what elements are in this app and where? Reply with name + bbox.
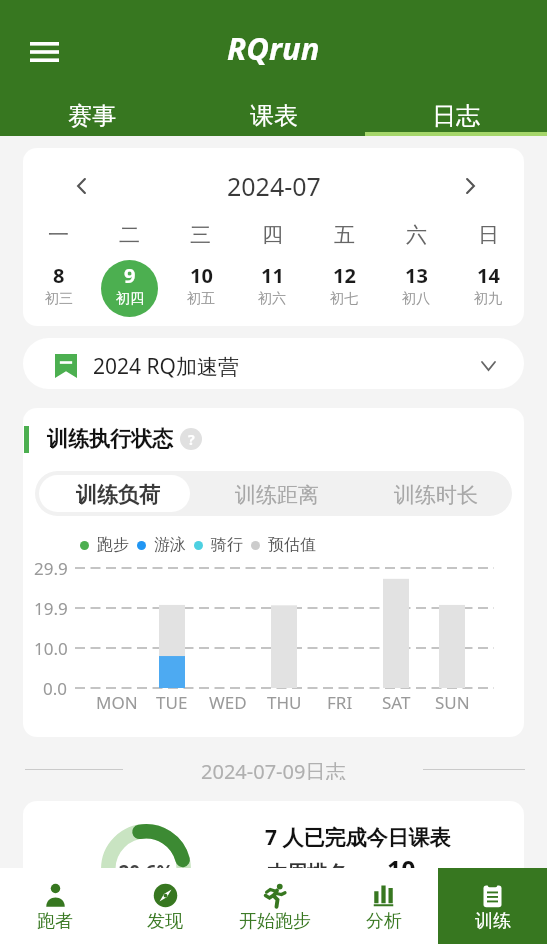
staticText: 训练负荷: [76, 482, 160, 508]
button[interactable]: 8: [23, 259, 94, 317]
button[interactable]: 训练时长: [357, 475, 508, 512]
button[interactable]: 跑者: [0, 868, 110, 944]
staticText: 29.9: [34, 557, 68, 579]
staticText: 20.6%: [113, 859, 179, 885]
staticText: 10: [190, 262, 213, 289]
staticText: 9: [124, 262, 136, 289]
staticText: 12: [333, 262, 356, 289]
staticText: 初五: [187, 290, 215, 308]
staticText: 2024-07: [227, 169, 321, 203]
staticText: 预估值: [268, 535, 316, 555]
button[interactable]: 训练: [438, 868, 547, 944]
staticText: MON: [96, 691, 138, 714]
staticText: THU: [267, 691, 302, 714]
staticText: 11: [261, 262, 284, 289]
button[interactable]: 发现: [110, 868, 220, 944]
staticText: 本周排名: [267, 861, 347, 886]
button[interactable]: 9: [94, 259, 165, 317]
button[interactable]: 11: [236, 259, 308, 317]
staticText: ?: [188, 430, 195, 449]
staticText: SUN: [435, 691, 470, 714]
button[interactable]: 课表: [183, 92, 365, 136]
button[interactable]: 2024 RQ加速营: [23, 338, 524, 389]
button[interactable]: Help: [180, 428, 202, 450]
staticText: 分析: [366, 910, 402, 933]
staticText: 2024-07-09日志: [201, 758, 346, 780]
staticText: 发现: [147, 910, 183, 933]
staticText: 初六: [258, 290, 286, 308]
staticText: RQrun: [227, 27, 320, 69]
button[interactable]: 赛事: [0, 92, 183, 136]
staticText: 开始跑步: [239, 910, 311, 933]
staticText: 五: [334, 222, 355, 248]
button[interactable]: Menu: [17, 25, 71, 79]
staticText: 日: [478, 222, 499, 248]
staticText: 骑行: [211, 535, 243, 555]
staticText: 训练时长: [394, 482, 478, 508]
button[interactable]: 开始跑步: [220, 868, 329, 944]
staticText: 二: [119, 222, 140, 248]
button[interactable]: 13: [380, 259, 452, 317]
staticText: 初八: [402, 290, 430, 308]
button[interactable]: Next month: [448, 164, 492, 208]
staticText: 7 人已完成今日课表: [265, 823, 451, 852]
staticText: 10.0: [34, 637, 68, 659]
staticText: 13: [405, 262, 428, 289]
button[interactable]: Expand: [468, 344, 508, 384]
staticText: FRI: [327, 691, 353, 714]
staticText: 六: [406, 222, 427, 248]
staticText: 初四: [116, 290, 144, 308]
button[interactable]: 12: [308, 259, 380, 317]
staticText: 训练执行状态: [47, 426, 173, 452]
staticText: 初七: [330, 290, 358, 308]
staticText: 0.0: [43, 677, 68, 699]
button[interactable]: 10: [165, 259, 236, 317]
staticText: 19.9: [34, 597, 68, 619]
staticText: 2024 RQ加速营: [93, 352, 239, 381]
staticText: 训练: [475, 910, 511, 933]
button[interactable]: 训练距离: [198, 475, 349, 512]
staticText: 训练距离: [235, 482, 319, 508]
button[interactable]: 14: [452, 259, 524, 317]
button[interactable]: Previous month: [59, 164, 103, 208]
staticText: SAT: [382, 691, 411, 714]
staticText: 跑步: [97, 535, 129, 555]
staticText: 跑者: [37, 910, 73, 933]
staticText: 日志: [432, 101, 480, 131]
staticText: TUE: [156, 691, 188, 714]
staticText: 赛事: [68, 101, 116, 131]
staticText: 初三: [45, 290, 73, 308]
button[interactable]: 日志: [365, 92, 547, 136]
staticText: 游泳: [154, 535, 186, 555]
staticText: WED: [209, 691, 247, 714]
staticText: 8: [53, 262, 65, 289]
staticText: 14: [477, 262, 500, 289]
staticText: 一: [48, 222, 69, 248]
staticText: 初九: [474, 290, 502, 308]
staticText: 三: [190, 222, 211, 248]
button[interactable]: 分析: [329, 868, 438, 944]
staticText: 10: [387, 852, 416, 886]
staticText: 课表: [250, 101, 298, 131]
button[interactable]: 训练负荷: [39, 475, 190, 512]
staticText: 四: [262, 222, 283, 248]
